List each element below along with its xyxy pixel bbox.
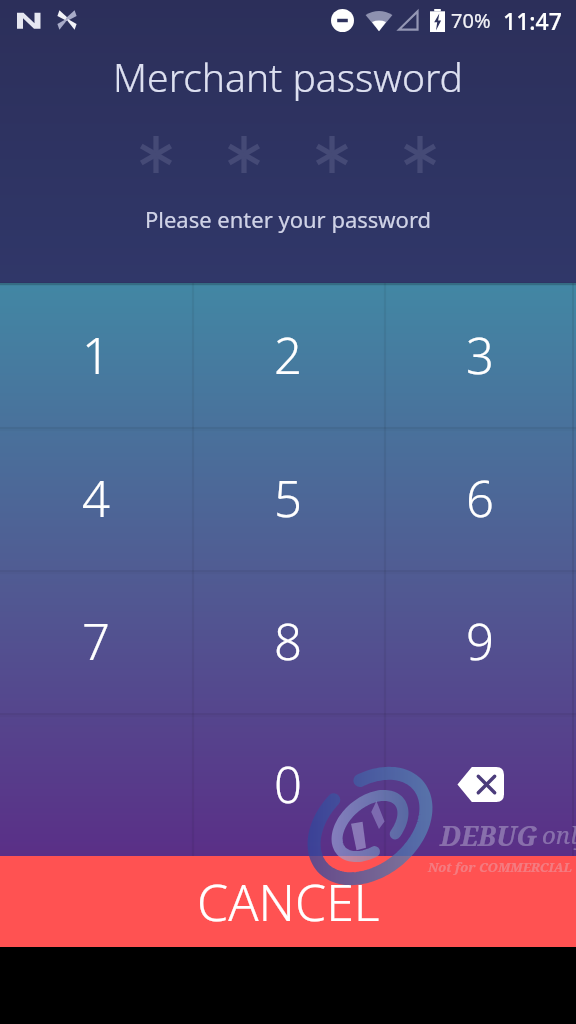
button[interactable]: 3 [384, 283, 576, 427]
staticText: 8 [274, 608, 302, 675]
staticText: 3 [466, 322, 494, 389]
button[interactable]: 0 [192, 713, 384, 856]
button[interactable]: 2 [192, 283, 384, 427]
button[interactable]: 9 [384, 570, 576, 713]
staticText: 70% [451, 7, 491, 34]
staticText: 7 [82, 608, 110, 675]
staticText: Merchant password [0, 50, 576, 103]
staticText: only [542, 818, 576, 851]
button[interactable]: 8 [192, 570, 384, 713]
button[interactable]: 7 [0, 570, 192, 713]
button[interactable]: 6 [384, 427, 576, 570]
staticText: Please enter your password [0, 204, 576, 234]
button[interactable]: 1 [0, 283, 192, 427]
staticText: DEBUG [440, 817, 538, 854]
button[interactable]: CANCEL [0, 856, 576, 947]
staticText: 0 [274, 751, 302, 818]
button[interactable]: 5 [192, 427, 384, 570]
button[interactable]: 4 [0, 427, 192, 570]
staticText: 5 [274, 465, 302, 532]
staticText: 9 [466, 608, 494, 675]
button[interactable]: Backspace [384, 713, 576, 856]
staticText: 4 [82, 465, 110, 532]
staticText: 2 [274, 322, 302, 389]
staticText: 6 [466, 465, 494, 532]
staticText: CANCEL [197, 868, 380, 936]
staticText: Not for COMMERCIAL [428, 858, 572, 876]
staticText: 11:47 [503, 5, 562, 36]
staticText: 1 [82, 322, 110, 389]
